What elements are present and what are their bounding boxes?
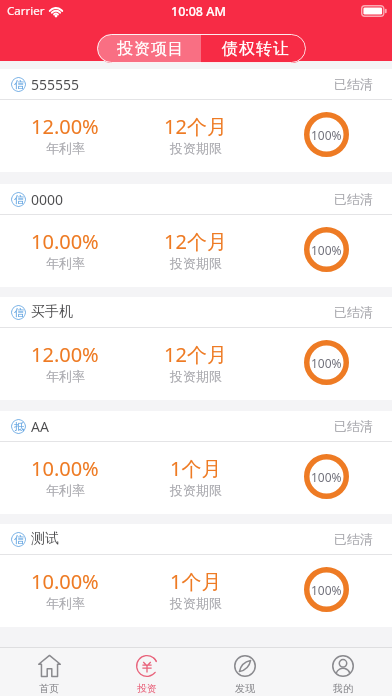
button[interactable]: 发现 xyxy=(196,648,294,696)
button[interactable]: 债权转让 xyxy=(201,34,306,63)
staticText: 12个月 xyxy=(164,113,227,140)
button[interactable]: 投资项目 xyxy=(97,34,201,63)
other: 发现 xyxy=(234,655,256,677)
staticText: 抵 xyxy=(14,420,24,433)
staticText: 已结清 xyxy=(334,304,373,320)
staticText: 100% xyxy=(311,582,342,598)
button[interactable]: 信 xyxy=(0,184,392,287)
staticText: 100% xyxy=(311,127,342,143)
staticText: 投资 xyxy=(137,682,157,695)
staticText: 买手机 xyxy=(31,303,73,321)
staticText: 测试 xyxy=(31,530,59,548)
staticText: 100% xyxy=(311,469,342,485)
staticText: 12.00% xyxy=(31,341,99,368)
staticText: 信 xyxy=(14,78,24,91)
staticText: 信 xyxy=(14,193,24,206)
staticText: 1个月 xyxy=(170,455,222,482)
staticText: 1个月 xyxy=(170,568,222,595)
button[interactable]: 抵 xyxy=(0,411,392,514)
staticText: 投资期限 xyxy=(170,482,222,498)
staticText: 10.00% xyxy=(31,228,99,255)
staticText: 我的 xyxy=(333,682,353,695)
other: 投资 xyxy=(136,655,158,677)
staticText: 发现 xyxy=(235,682,255,695)
staticText: 投资期限 xyxy=(170,255,222,271)
button[interactable]: 投资 xyxy=(98,648,196,696)
button[interactable]: 信 xyxy=(0,297,392,400)
staticText: 已结清 xyxy=(334,191,373,207)
staticText: 债权转让 xyxy=(222,39,290,59)
other: 我的 xyxy=(332,655,354,677)
staticText: 10.00% xyxy=(31,568,99,595)
staticText: AA xyxy=(31,417,49,436)
staticText: 0000 xyxy=(31,190,64,209)
staticText: 12个月 xyxy=(164,341,227,368)
staticText: Carrier xyxy=(7,3,45,19)
staticText: 已结清 xyxy=(334,531,373,547)
staticText: 10.00% xyxy=(31,455,99,482)
staticText: 信 xyxy=(14,533,24,546)
staticText: 已结清 xyxy=(334,418,373,434)
button[interactable]: 首页 xyxy=(0,648,98,696)
button[interactable]: 我的 xyxy=(294,648,392,696)
staticText: 投资期限 xyxy=(170,140,222,156)
staticText: 12.00% xyxy=(31,113,99,140)
staticText: 年利率 xyxy=(46,595,85,611)
staticText: 年利率 xyxy=(46,255,85,271)
staticText: 12个月 xyxy=(164,228,227,255)
staticText: 100% xyxy=(311,355,342,371)
staticText: 投资期限 xyxy=(170,595,222,611)
staticText: 年利率 xyxy=(46,140,85,156)
staticText: 投资项目 xyxy=(117,39,185,59)
staticText: 100% xyxy=(311,242,342,258)
staticText: 信 xyxy=(14,306,24,319)
staticText: 投资期限 xyxy=(170,368,222,384)
staticText: 年利率 xyxy=(46,482,85,498)
staticText: 已结清 xyxy=(334,76,373,92)
staticText: 年利率 xyxy=(46,368,85,384)
staticText: 首页 xyxy=(39,682,59,695)
button[interactable]: 信 xyxy=(0,524,392,627)
staticText: 555555 xyxy=(31,75,80,94)
button[interactable]: 信 xyxy=(0,69,392,172)
other: 首页 xyxy=(38,655,61,677)
staticText: 10:08 AM xyxy=(171,3,226,20)
